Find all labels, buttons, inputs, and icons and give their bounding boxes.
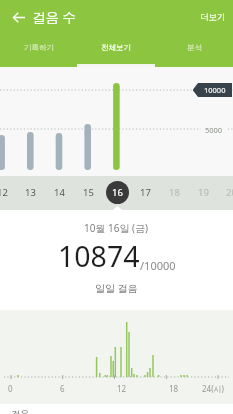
staticText: 전체보기: [101, 43, 131, 52]
staticText: 분석: [187, 43, 202, 52]
staticText: /10000: [140, 258, 176, 273]
button[interactable]: 분석: [155, 34, 233, 67]
button[interactable]: 12: [0, 181, 14, 204]
button[interactable]: 전체보기: [77, 34, 155, 67]
staticText: 16: [112, 186, 123, 199]
button[interactable]: 13: [19, 181, 42, 204]
staticText: 17: [140, 186, 151, 199]
staticText: 5000: [205, 125, 223, 134]
staticText: 12: [117, 383, 127, 394]
staticText: 10000: [204, 85, 226, 95]
staticText: 14: [54, 186, 65, 199]
staticText: 18: [169, 186, 180, 199]
staticText: 24(시): [202, 383, 224, 394]
staticText: 6: [60, 383, 65, 394]
staticText: 기록하기: [24, 43, 54, 52]
button[interactable]: 16: [106, 181, 129, 204]
staticText: 걸음 수: [32, 8, 77, 26]
staticText: 더보기: [200, 12, 226, 23]
staticText: 12: [0, 186, 8, 199]
staticText: 13: [25, 186, 36, 199]
button[interactable]: 기록하기: [0, 34, 77, 67]
button[interactable]: 더보기: [189, 0, 233, 34]
staticText: 19: [198, 186, 209, 199]
button[interactable]: 17: [134, 181, 157, 204]
staticText: 일일 걸음: [95, 281, 138, 295]
staticText: 걸음: [11, 408, 29, 414]
button[interactable]: 14: [48, 181, 71, 204]
staticText: 10월 16일 (금): [84, 221, 149, 235]
staticText: 18: [169, 383, 179, 394]
staticText: 15: [83, 186, 94, 199]
staticText: 0: [8, 383, 13, 394]
button[interactable]: Back: [0, 0, 31, 34]
button[interactable]: 20: [220, 181, 233, 204]
button[interactable]: 18: [163, 181, 186, 204]
staticText: 10874: [58, 237, 140, 276]
button[interactable]: 19: [192, 181, 215, 204]
button[interactable]: 15: [77, 181, 100, 204]
staticText: 20: [226, 186, 233, 199]
